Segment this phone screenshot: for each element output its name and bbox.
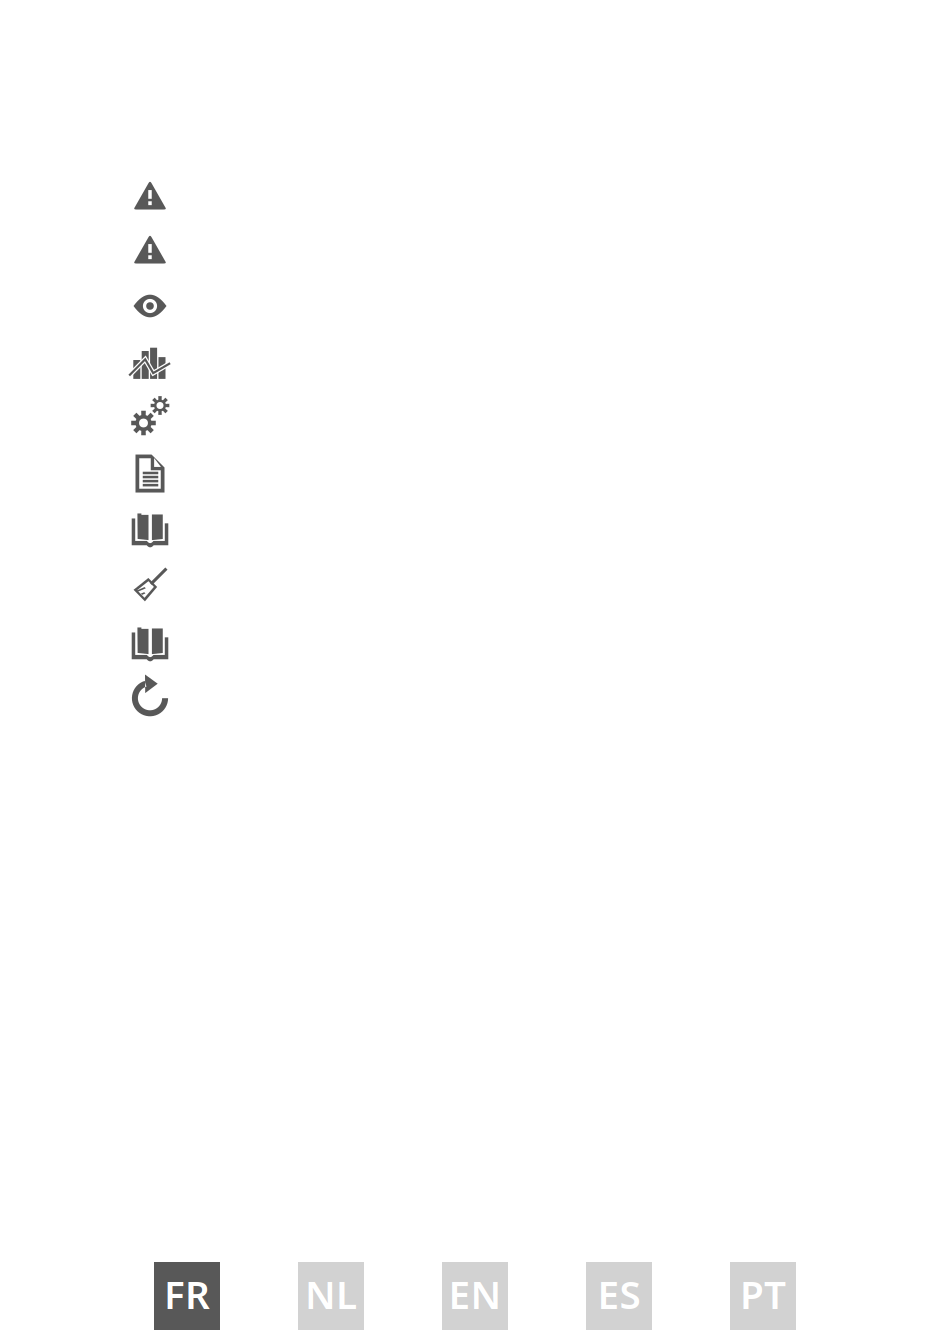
staticText: EN: [448, 1268, 501, 1320]
button[interactable]: Manual: [0, 502, 950, 558]
button[interactable]: NL: [298, 1262, 364, 1330]
button[interactable]: Settings: [0, 390, 950, 446]
button[interactable]: Statistics: [0, 334, 950, 390]
staticText: PT: [740, 1268, 786, 1320]
button[interactable]: Guide: [0, 614, 950, 670]
button[interactable]: FR: [154, 1262, 220, 1330]
button[interactable]: Clean up: [0, 558, 950, 614]
staticText: FR: [164, 1268, 210, 1320]
button[interactable]: Document: [0, 446, 950, 502]
staticText: ES: [597, 1268, 640, 1320]
button[interactable]: Warning: [0, 166, 950, 222]
button[interactable]: Refresh: [0, 670, 950, 726]
button[interactable]: EN: [442, 1262, 508, 1330]
button[interactable]: ES: [586, 1262, 652, 1330]
button[interactable]: PT: [730, 1262, 796, 1330]
button[interactable]: Preview: [0, 278, 950, 334]
button[interactable]: Alert: [0, 222, 950, 278]
staticText: NL: [305, 1268, 357, 1320]
